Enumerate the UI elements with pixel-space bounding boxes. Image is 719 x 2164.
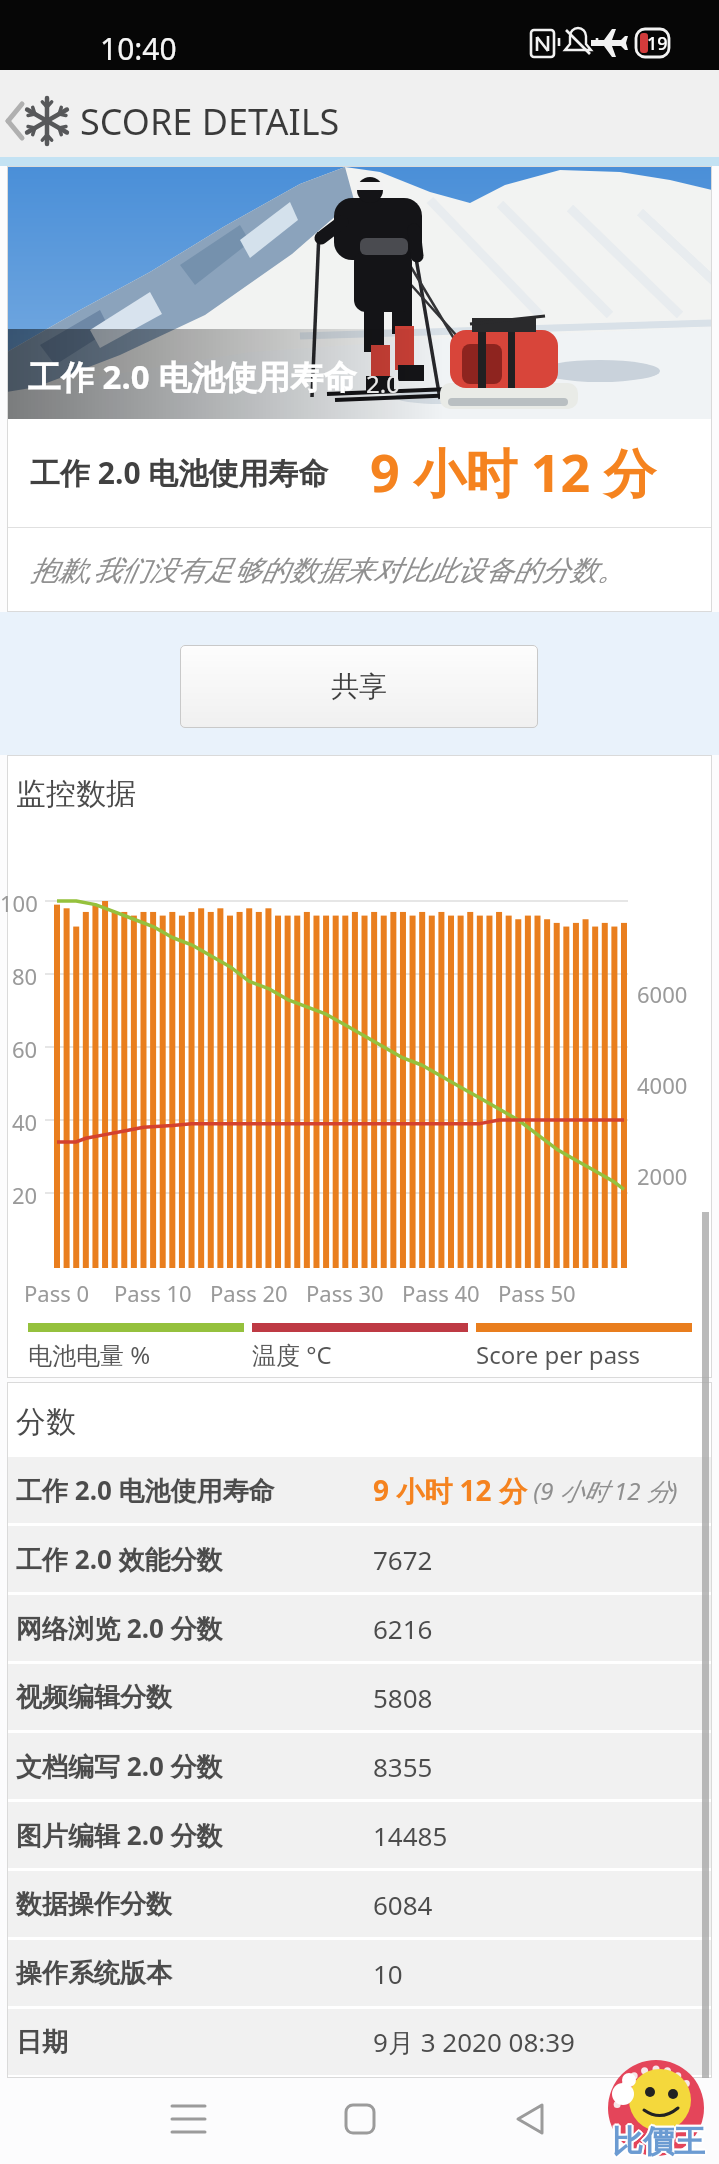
staticText: 图片编辑 2.0 分数 [16, 1817, 223, 1853]
button[interactable] [320, 2090, 400, 2150]
staticText: 7672 [373, 1542, 433, 1577]
staticText: Pass 0 [24, 1278, 90, 1304]
staticText: 2.0 [366, 367, 400, 400]
staticText: 9 小时 12 分 [373, 1471, 527, 1509]
staticText: 工作 2.0 效能分数 [16, 1541, 223, 1577]
staticText: 比價王 [613, 2121, 706, 2160]
staticText: 14485 [373, 1818, 448, 1853]
staticText: 4000 [637, 1070, 688, 1100]
staticText: Pass 30 [306, 1278, 384, 1304]
staticText: 9月 3 2020 08:39 [373, 2024, 575, 2060]
staticText: 比價王 [611, 2121, 704, 2160]
staticText: 比價王 [610, 2122, 703, 2161]
staticText: 100 [0, 888, 38, 914]
staticText: 19 [647, 31, 668, 56]
staticText: 工作 2.0 电池使用寿命 [16, 1472, 275, 1508]
staticText: 80 [12, 961, 38, 987]
staticText: (9 小时 12 分) [527, 1474, 678, 1507]
staticText: 日期 [16, 2026, 68, 2059]
staticText: 监控数据 [16, 775, 136, 813]
staticText: Pass 40 [402, 1278, 480, 1304]
staticText: 抱歉,我们没有足够的数据来对比此设备的分数。 [30, 550, 626, 588]
staticText: 操作系统版本 [16, 1957, 172, 1990]
staticText: 数据操作分数 [16, 1888, 172, 1921]
staticText: 温度 °C [252, 1338, 332, 1371]
staticText: 文档编写 2.0 分数 [16, 1748, 223, 1784]
button[interactable] [490, 2090, 570, 2150]
staticText: 6084 [373, 1887, 433, 1922]
staticText: 20 [12, 1180, 38, 1206]
staticText: Score per pass [476, 1338, 641, 1371]
staticText: SCORE DETAILS [80, 97, 340, 146]
staticText: 视频编辑分数 [16, 1681, 172, 1714]
staticText: 2000 [637, 1161, 688, 1191]
staticText: 10 [373, 1956, 403, 1991]
staticText: 比價王 [613, 2123, 706, 2162]
staticText: 5808 [373, 1680, 433, 1715]
staticText: 8355 [373, 1749, 433, 1784]
staticText: Pass 10 [114, 1278, 192, 1304]
button[interactable] [0, 90, 70, 155]
staticText: 比價王 [612, 2124, 705, 2163]
staticText: 6216 [373, 1611, 433, 1646]
button[interactable]: 共享 [180, 645, 538, 728]
staticText: 比價王 [612, 2120, 705, 2159]
staticText: 比價王 [611, 2123, 704, 2162]
staticText: 电池电量 % [28, 1338, 151, 1371]
button[interactable] [150, 2090, 230, 2150]
staticText: 6000 [637, 979, 688, 1009]
staticText: 分数 [16, 1403, 76, 1441]
staticText: 40 [12, 1107, 38, 1133]
staticText: 60 [12, 1034, 38, 1060]
staticText: Pass 20 [210, 1278, 288, 1304]
staticText: 网络浏览 2.0 分数 [16, 1610, 223, 1646]
staticText: 共享 [331, 669, 387, 704]
staticText: 比價王 [614, 2122, 707, 2161]
staticText: 10:40 [100, 28, 177, 69]
staticText: Pass 50 [498, 1278, 576, 1304]
staticText: 比價王 [612, 2122, 705, 2161]
staticText: 9 小时 12 分 [370, 436, 656, 507]
staticText: 工作 2.0 电池使用寿命 [30, 452, 329, 493]
staticText: 工作 2.0 电池使用寿命 [28, 354, 357, 399]
